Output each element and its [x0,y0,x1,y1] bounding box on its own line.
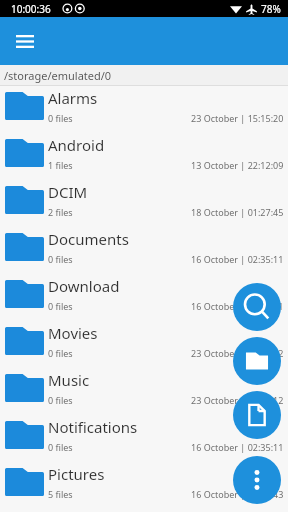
staticText: 0 files [48,347,73,359]
button[interactable]: More options [233,456,281,504]
button[interactable]: Notifications [0,415,288,462]
staticText: 0 files [48,112,73,124]
button[interactable]: Open navigation drawer [8,24,42,58]
button[interactable]: Alarms [0,86,288,133]
staticText: Android [48,135,105,155]
button[interactable]: Search [233,283,281,331]
staticText: 10:00:36 [11,2,51,16]
staticText: 23 October | 15:15:12 [191,394,284,406]
button[interactable]: Android [0,133,288,180]
staticText: 16 October | 02:35:11 [191,441,284,453]
staticText: 0 files [48,394,73,406]
button[interactable]: /storage/emulated/0 [0,65,288,85]
staticText: 1 files [48,159,73,171]
staticText: Pictures [48,464,105,484]
staticText: 16 October | 02:35:11 [191,300,284,312]
staticText: Movies [48,323,98,343]
staticText: 0 files [48,300,73,312]
button[interactable]: Movies [0,321,288,368]
staticText: 23 October | 15:15:20 [191,112,284,124]
button[interactable]: New folder [233,337,281,385]
staticText: 16 October | 02:40:43 [191,488,284,500]
staticText: 23 October | 15:15:12 [191,347,284,359]
staticText: Alarms [48,88,98,108]
button[interactable]: Pictures [0,462,288,509]
staticText: 16 October | 02:35:11 [191,253,284,265]
staticText: 78% [261,2,281,16]
staticText: 0 files [48,253,73,265]
button[interactable]: Download [0,274,288,321]
button[interactable]: Music [0,368,288,415]
staticText: 5 files [48,488,73,500]
staticText: /storage/emulated/0 [4,68,112,83]
staticText: Download [48,276,120,296]
staticText: 18 October | 01:27:45 [191,206,284,218]
button[interactable]: DCIM [0,180,288,227]
staticText: DCIM [48,182,88,202]
staticText: Notifications [48,417,138,437]
button[interactable]: Documents [0,227,288,274]
staticText: 0 files [48,441,73,453]
staticText: 13 October | 22:12:09 [191,159,284,171]
staticText: 2 files [48,206,73,218]
button[interactable]: New file [233,391,281,439]
staticText: Music [48,370,90,390]
staticText: Documents [48,229,129,249]
